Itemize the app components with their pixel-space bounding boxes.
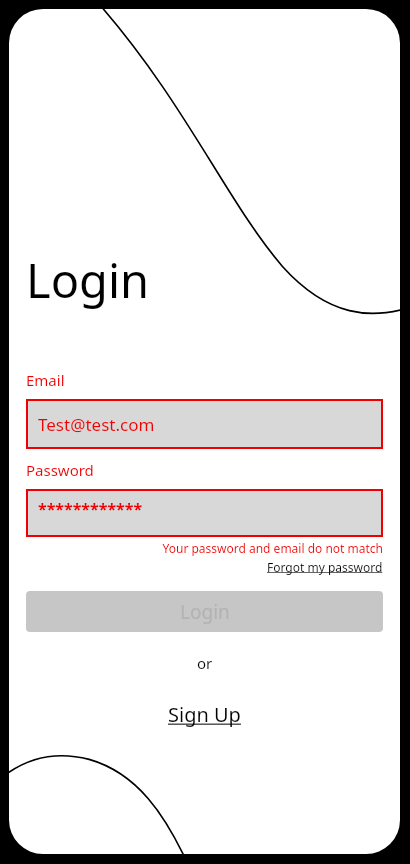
- staticText: Test@test.com: [38, 413, 155, 436]
- button[interactable]: Sign Up: [168, 701, 241, 728]
- staticText: Email: [26, 370, 65, 390]
- staticText: Login: [26, 248, 150, 312]
- staticText: Password: [26, 460, 94, 480]
- staticText: or: [197, 653, 213, 673]
- button[interactable]: Forgot my password: [267, 559, 383, 575]
- staticText: ************: [38, 498, 143, 520]
- staticText: Login: [180, 599, 230, 625]
- staticText: Your password and email do not match: [26, 540, 383, 556]
- button[interactable]: ************: [26, 489, 383, 537]
- button[interactable]: Test@test.com: [26, 399, 383, 449]
